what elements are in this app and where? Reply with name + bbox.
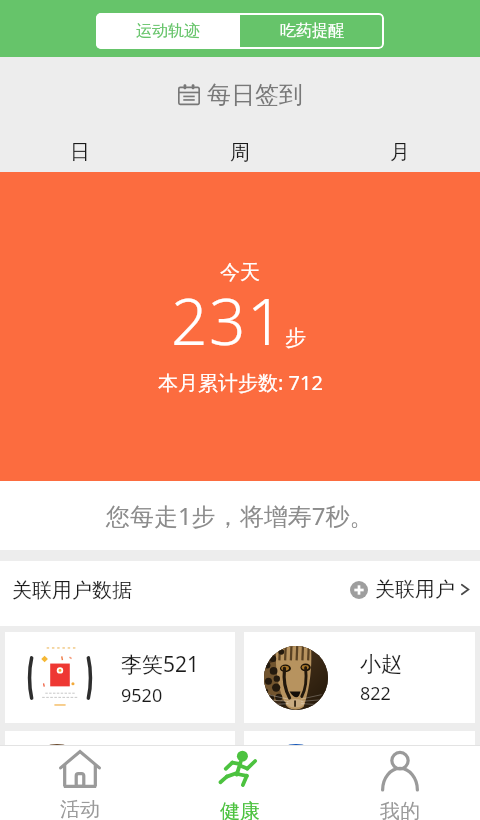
staticText: 步 — [285, 325, 306, 351]
staticText: 231 — [171, 277, 286, 364]
button[interactable]: 吃药提醒 — [240, 13, 384, 49]
staticText: 小赵 — [360, 651, 402, 677]
staticText: 9520 — [121, 683, 163, 708]
staticText: 本月累计步数: 712 — [158, 369, 323, 396]
button[interactable]: 健康 — [160, 746, 320, 820]
button[interactable]: 运动轨迹 — [96, 13, 240, 49]
staticText: 李笑521 — [121, 650, 200, 679]
button[interactable]: 我的 — [320, 746, 480, 820]
button[interactable]: 日 — [0, 133, 160, 172]
other: More — [460, 581, 470, 598]
button[interactable]: 周 — [160, 133, 320, 172]
other: Add linked user — [350, 581, 368, 599]
staticText: 今天 — [220, 260, 260, 285]
staticText: 822 — [360, 681, 391, 706]
button[interactable]: 月 — [320, 133, 480, 172]
staticText: 运动轨迹 — [136, 21, 200, 41]
staticText: 我的 — [380, 799, 420, 820]
staticText: 关联用户数据 — [12, 578, 132, 603]
button[interactable]: 活动 — [0, 746, 160, 820]
button[interactable]: 赵六 — [244, 731, 475, 820]
staticText: 455 — [360, 779, 391, 804]
button[interactable]: Add linked user — [347, 571, 473, 608]
staticText: 活动 — [60, 797, 100, 820]
staticText: 日 — [70, 140, 90, 165]
staticText: 您每走1步，将增寿7秒。 — [106, 499, 374, 532]
button[interactable]: 小赵 — [244, 632, 475, 723]
staticText: 健康 — [220, 799, 260, 820]
staticText: 关联用户 — [375, 577, 455, 602]
staticText: 赵六 — [360, 749, 402, 775]
staticText: 吃药提醒 — [280, 21, 344, 41]
staticText: 周 — [230, 140, 250, 165]
button[interactable]: 李笑521 — [5, 632, 235, 723]
button[interactable]: 王五 — [5, 731, 235, 820]
staticText: 月 — [390, 140, 410, 165]
staticText: 每日签到 — [207, 80, 303, 110]
